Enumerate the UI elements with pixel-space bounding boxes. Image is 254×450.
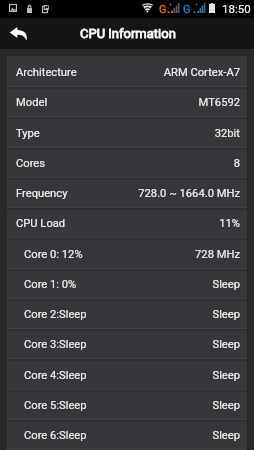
button[interactable]: Core 1: 0% xyxy=(7,268,247,298)
button[interactable]: Core 0: 12% xyxy=(7,238,247,268)
staticText: ARM Cortex-A7 xyxy=(77,66,240,79)
button[interactable]: Core 5:Sleep xyxy=(7,389,247,419)
staticText: Sleep xyxy=(87,338,240,351)
staticText: 8 xyxy=(46,157,240,170)
staticText: Core 5:Sleep xyxy=(24,399,87,412)
staticText: 32bit xyxy=(40,127,240,140)
staticText: CPU Information xyxy=(80,26,176,41)
staticText: Core 0: 12% xyxy=(24,248,83,261)
staticText: Sleep xyxy=(87,399,240,412)
staticText: G xyxy=(159,3,167,16)
staticText: MT6592 xyxy=(48,96,240,109)
staticText: Sleep xyxy=(87,308,240,321)
staticText: CPU Load xyxy=(16,217,66,230)
button[interactable]: Core 6:Sleep xyxy=(7,419,247,449)
button[interactable]: Model xyxy=(7,86,247,116)
button[interactable]: Core 2:Sleep xyxy=(7,298,247,328)
staticText: 728 MHz xyxy=(83,248,240,261)
button[interactable]: Architecture xyxy=(7,56,247,86)
staticText: Core 1: 0% xyxy=(24,278,77,291)
staticText: Sleep xyxy=(87,429,240,442)
staticText: Sleep xyxy=(87,369,240,382)
staticText: Sleep xyxy=(77,278,240,291)
staticText: Architecture xyxy=(16,66,77,79)
button[interactable]: Core 4:Sleep xyxy=(7,359,247,389)
staticText: Model xyxy=(16,96,48,109)
staticText: Core 6:Sleep xyxy=(24,429,87,442)
staticText: Type xyxy=(16,127,40,140)
staticText: Core 4:Sleep xyxy=(24,369,87,382)
button[interactable]: CPU Load xyxy=(7,207,247,237)
button[interactable]: Type xyxy=(7,117,247,147)
button[interactable]: Core 3:Sleep xyxy=(7,328,247,358)
button[interactable]: Cores xyxy=(7,147,247,177)
staticText: 11% xyxy=(66,217,240,230)
button[interactable]: Back xyxy=(0,18,37,49)
staticText: 728.0 ~ 1664.0 MHz xyxy=(68,187,240,200)
staticText: Core 3:Sleep xyxy=(24,338,87,351)
staticText: Core 2:Sleep xyxy=(24,308,87,321)
staticText: G xyxy=(183,3,191,16)
staticText: Frequency xyxy=(16,187,68,200)
staticText: 18:50 xyxy=(222,2,251,15)
button[interactable]: Frequency xyxy=(7,177,247,207)
staticText: Cores xyxy=(16,157,46,170)
